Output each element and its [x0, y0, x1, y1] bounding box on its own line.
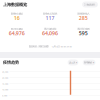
- staticText: 新增确诊 ▾: [84, 61, 94, 64]
- staticText: 10,000: [2, 88, 8, 91]
- staticText: 20,000: [2, 76, 8, 79]
- staticText: ⓘ 数据说明 ›: [83, 3, 96, 6]
- staticText: 5,000: [2, 94, 7, 97]
- staticText: 新增本土确诊: [11, 12, 23, 15]
- staticText: 15,000: [2, 82, 8, 85]
- staticText: 疫情趋势: [3, 60, 19, 65]
- staticText: 285: [79, 14, 88, 22]
- button[interactable]: ⓘ 数据说明 ›: [82, 2, 98, 7]
- staticText: 25,000: [2, 70, 8, 73]
- button[interactable]: 近30天 ▾: [68, 60, 78, 65]
- staticText: 累计死亡病例: [77, 27, 89, 30]
- staticText: 累计本土确诊: [11, 27, 23, 30]
- staticText: 数据来源：国家卫健委 12月12日 00:00-24:00: [28, 45, 71, 48]
- staticText: 上海数据概览: [3, 2, 27, 7]
- staticText: 近30天 ▾: [69, 61, 77, 64]
- staticText: 累计治愈出院: [44, 27, 56, 30]
- staticText: 64,976: [9, 30, 25, 37]
- staticText: 64,096: [42, 30, 58, 37]
- staticText: 595: [79, 30, 88, 37]
- staticText: 新增境外输入: [77, 12, 89, 15]
- staticText: 新增本土无症状: [43, 12, 57, 15]
- staticText: 16: [14, 14, 20, 22]
- staticText: 117: [45, 14, 54, 22]
- button[interactable]: 新增确诊 ▾: [83, 60, 95, 65]
